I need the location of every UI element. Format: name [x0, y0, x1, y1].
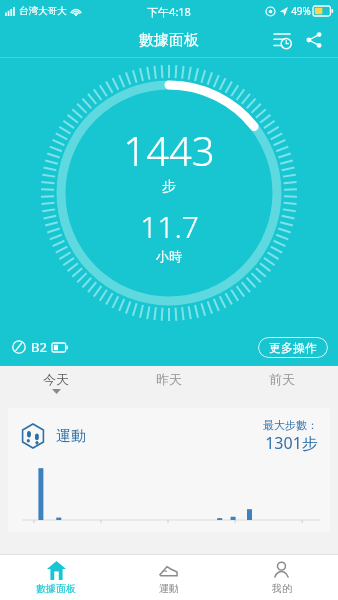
staticText: 49%	[291, 4, 311, 18]
staticText: 最大步數：	[263, 418, 318, 432]
staticText: 11.7	[140, 206, 199, 247]
button[interactable]: Share	[300, 26, 328, 54]
button[interactable]: 更多操作	[258, 337, 328, 358]
staticText: 前天	[269, 371, 295, 387]
staticText: 台湾大哥大	[19, 5, 67, 17]
staticText: 更多操作	[269, 340, 317, 355]
staticText: 下午4:18	[147, 4, 191, 19]
button[interactable]: 今天	[0, 366, 112, 402]
button[interactable]: 運動	[112, 555, 225, 600]
button[interactable]: B2	[12, 338, 68, 356]
staticText: 運動	[56, 427, 86, 446]
button[interactable]: 昨天	[112, 366, 225, 402]
button[interactable]: 我的	[225, 555, 338, 600]
staticText: 運動	[159, 582, 179, 595]
staticText: 昨天	[156, 371, 182, 387]
staticText: B2	[31, 338, 47, 356]
staticText: 1301步	[265, 432, 318, 454]
staticText: 我的	[272, 582, 292, 595]
staticText: 小時	[156, 248, 182, 264]
staticText: 數據面板	[139, 31, 199, 50]
staticText: 數據面板	[36, 582, 76, 595]
staticText: 今天	[43, 371, 69, 387]
button[interactable]: 數據面板	[0, 555, 112, 600]
button[interactable]: 運動	[8, 408, 330, 532]
button[interactable]: 前天	[225, 366, 338, 402]
staticText: 步	[162, 178, 176, 196]
button[interactable]: History	[268, 26, 296, 54]
staticText: 1443	[123, 123, 215, 177]
